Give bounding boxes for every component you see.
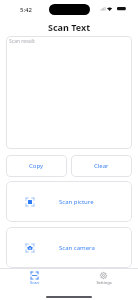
button[interactable]: Copy xyxy=(6,155,67,177)
staticText: Scan xyxy=(30,280,39,285)
button[interactable]: Scan picture xyxy=(6,181,132,222)
button[interactable]: Settings xyxy=(69,269,138,291)
staticText: Scan result xyxy=(9,38,35,45)
staticText: 5:42 xyxy=(20,6,32,14)
staticText: Copy xyxy=(29,162,44,170)
staticText: Scan picture xyxy=(59,198,94,206)
staticText: Scan Text xyxy=(48,21,91,33)
staticText: Scan camera xyxy=(59,244,95,252)
staticText: Clear xyxy=(94,162,109,170)
button[interactable]: Scan camera xyxy=(6,227,132,268)
button[interactable]: Scan xyxy=(0,269,69,291)
staticText: Settings xyxy=(96,280,112,285)
button[interactable]: Clear xyxy=(71,155,132,177)
